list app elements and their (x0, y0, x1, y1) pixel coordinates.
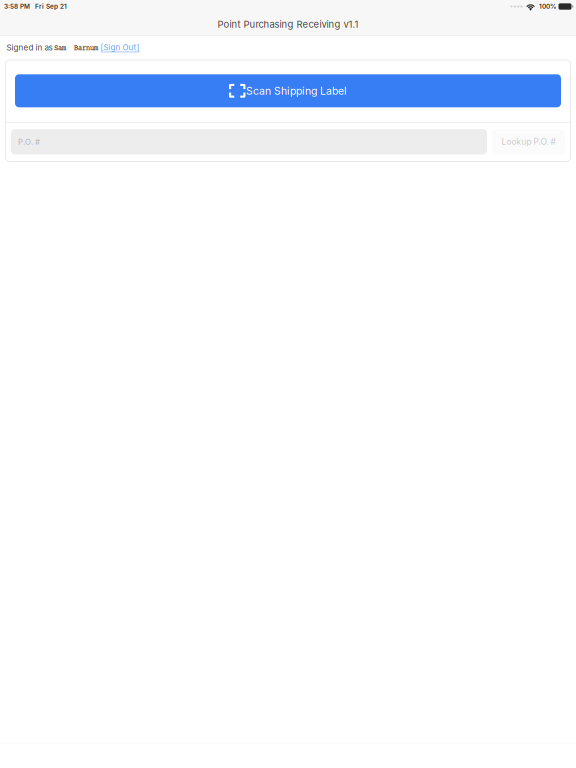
button[interactable]: [Sign Out] (98, 41, 140, 54)
button[interactable]: Scan Shipping Label (15, 74, 561, 107)
staticText: Point Purchasing Receiving v1.1 (217, 18, 358, 30)
button[interactable]: Lookup P.O. # (492, 129, 565, 154)
staticText: [Sign Out] (101, 43, 140, 52)
staticText: 100% (539, 3, 556, 10)
staticText: 3:58 PM (4, 3, 30, 10)
staticText: Signed in as (6, 43, 52, 52)
staticText: P.O. # (18, 137, 40, 146)
staticText: Fri Sep 21 (35, 3, 67, 10)
staticText: Scan Shipping Label (246, 84, 347, 97)
staticText: Lookup P.O. # (501, 137, 555, 147)
staticText: Sam Barnum (54, 43, 98, 52)
